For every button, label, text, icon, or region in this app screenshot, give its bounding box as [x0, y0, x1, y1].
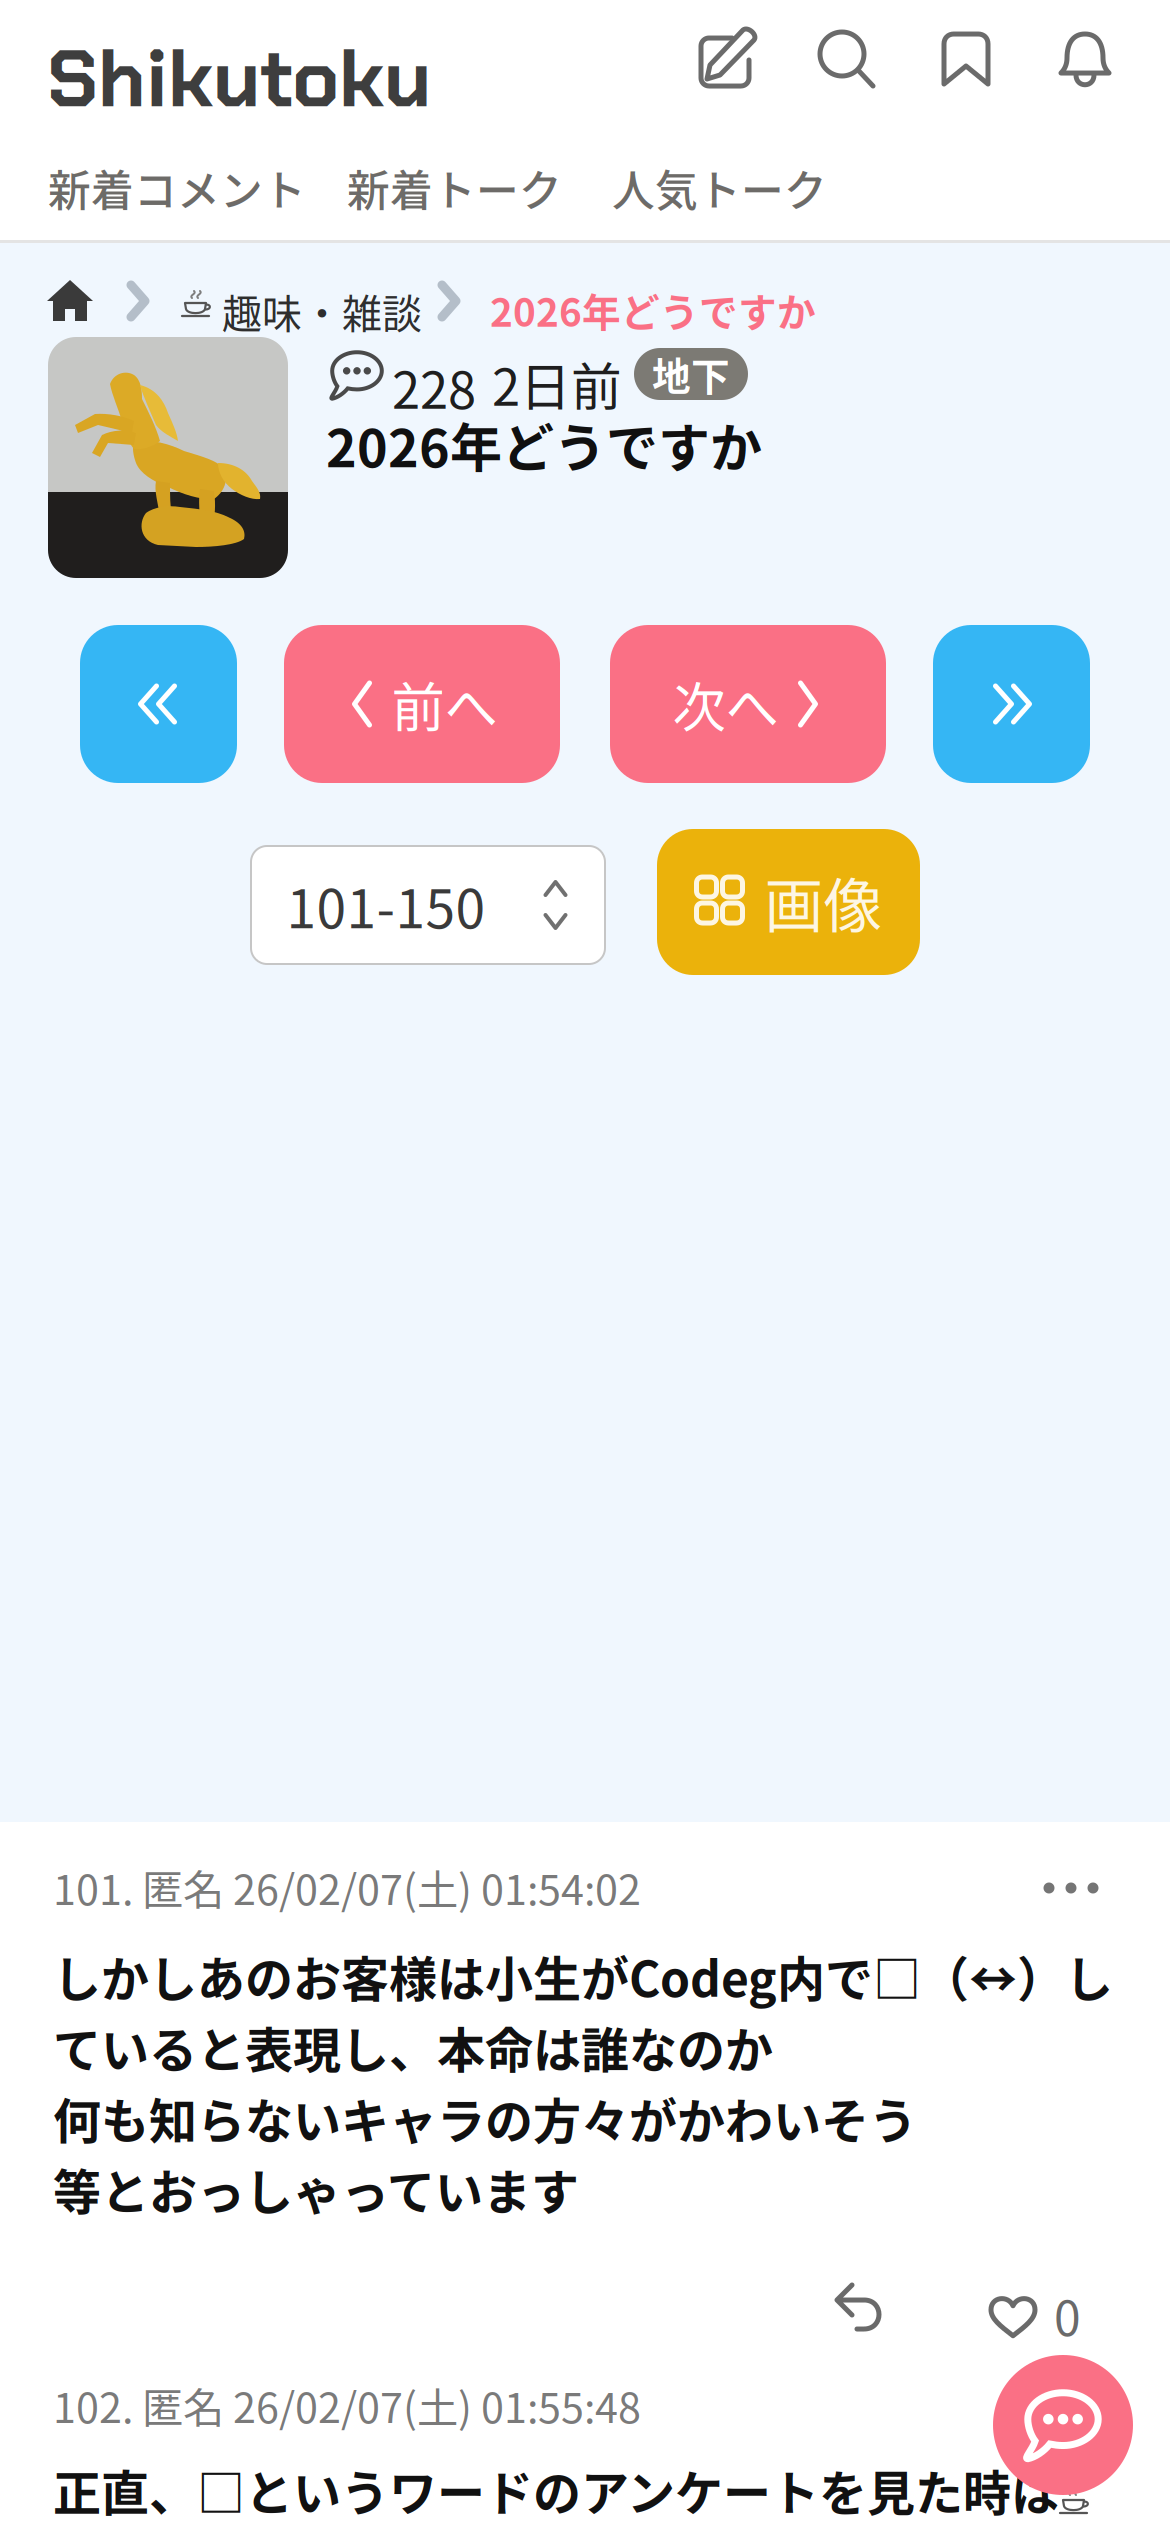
- staticText: 2026年どうですか: [490, 282, 816, 338]
- staticText: 地下: [652, 346, 730, 402]
- staticText: 画像: [764, 859, 882, 944]
- button[interactable]: Search: [817, 29, 875, 89]
- button[interactable]: 次へ: [610, 625, 886, 783]
- staticText: 正直、□というワードのアンケートを見た時は: [53, 2455, 1059, 2524]
- button[interactable]: Reply: [832, 2280, 890, 2336]
- staticText: 新着コメント: [48, 157, 306, 219]
- button[interactable]: More options: [1042, 1866, 1100, 1910]
- staticText: 前へ: [391, 665, 497, 743]
- button[interactable]: Home: [46, 276, 94, 326]
- staticText: 101. 匿名 26/02/07(土) 01:54:02: [53, 1857, 641, 1917]
- button[interactable]: Notifications: [1058, 30, 1112, 88]
- staticText: 0: [1054, 2280, 1081, 2349]
- staticText: 次へ: [672, 665, 778, 743]
- staticText: 2日前: [492, 347, 622, 420]
- staticText: 228: [392, 350, 476, 423]
- staticText: Shikutoku: [47, 27, 431, 131]
- staticText: 何も知らないキャラの方々がかわいそう: [53, 2083, 917, 2152]
- button[interactable]: Last page: [933, 625, 1090, 783]
- staticText: 趣味・雑談: [222, 282, 422, 340]
- staticText: 等とおっしゃっています: [53, 2154, 579, 2223]
- button[interactable]: 新着コメント: [48, 157, 306, 219]
- staticText: 101-150: [286, 866, 485, 944]
- button[interactable]: 趣味・雑談: [222, 282, 422, 340]
- staticText: 人気トーク: [612, 157, 827, 219]
- button[interactable]: 画像: [657, 829, 920, 975]
- staticText: 新着トーク: [347, 157, 562, 219]
- staticText: しかしあのお客様は小生がCodeg内で□（↔）し: [53, 1941, 1113, 2010]
- button[interactable]: 0: [986, 2280, 1081, 2349]
- button[interactable]: Compose: [696, 27, 758, 91]
- button[interactable]: 新着トーク: [347, 157, 562, 219]
- staticText: 102. 匿名 26/02/07(土) 01:55:48: [53, 2375, 641, 2435]
- button[interactable]: New comment: [993, 2355, 1133, 2495]
- staticText: 2026年どうですか: [326, 407, 762, 482]
- button[interactable]: 101-150: [251, 846, 605, 964]
- button[interactable]: Bookmarks: [941, 30, 991, 88]
- staticText: ていると表現し、本命は誰なのか: [53, 2012, 773, 2081]
- button[interactable]: First page: [80, 625, 237, 783]
- button[interactable]: 前へ: [284, 625, 560, 783]
- button[interactable]: 人気トーク: [612, 157, 827, 219]
